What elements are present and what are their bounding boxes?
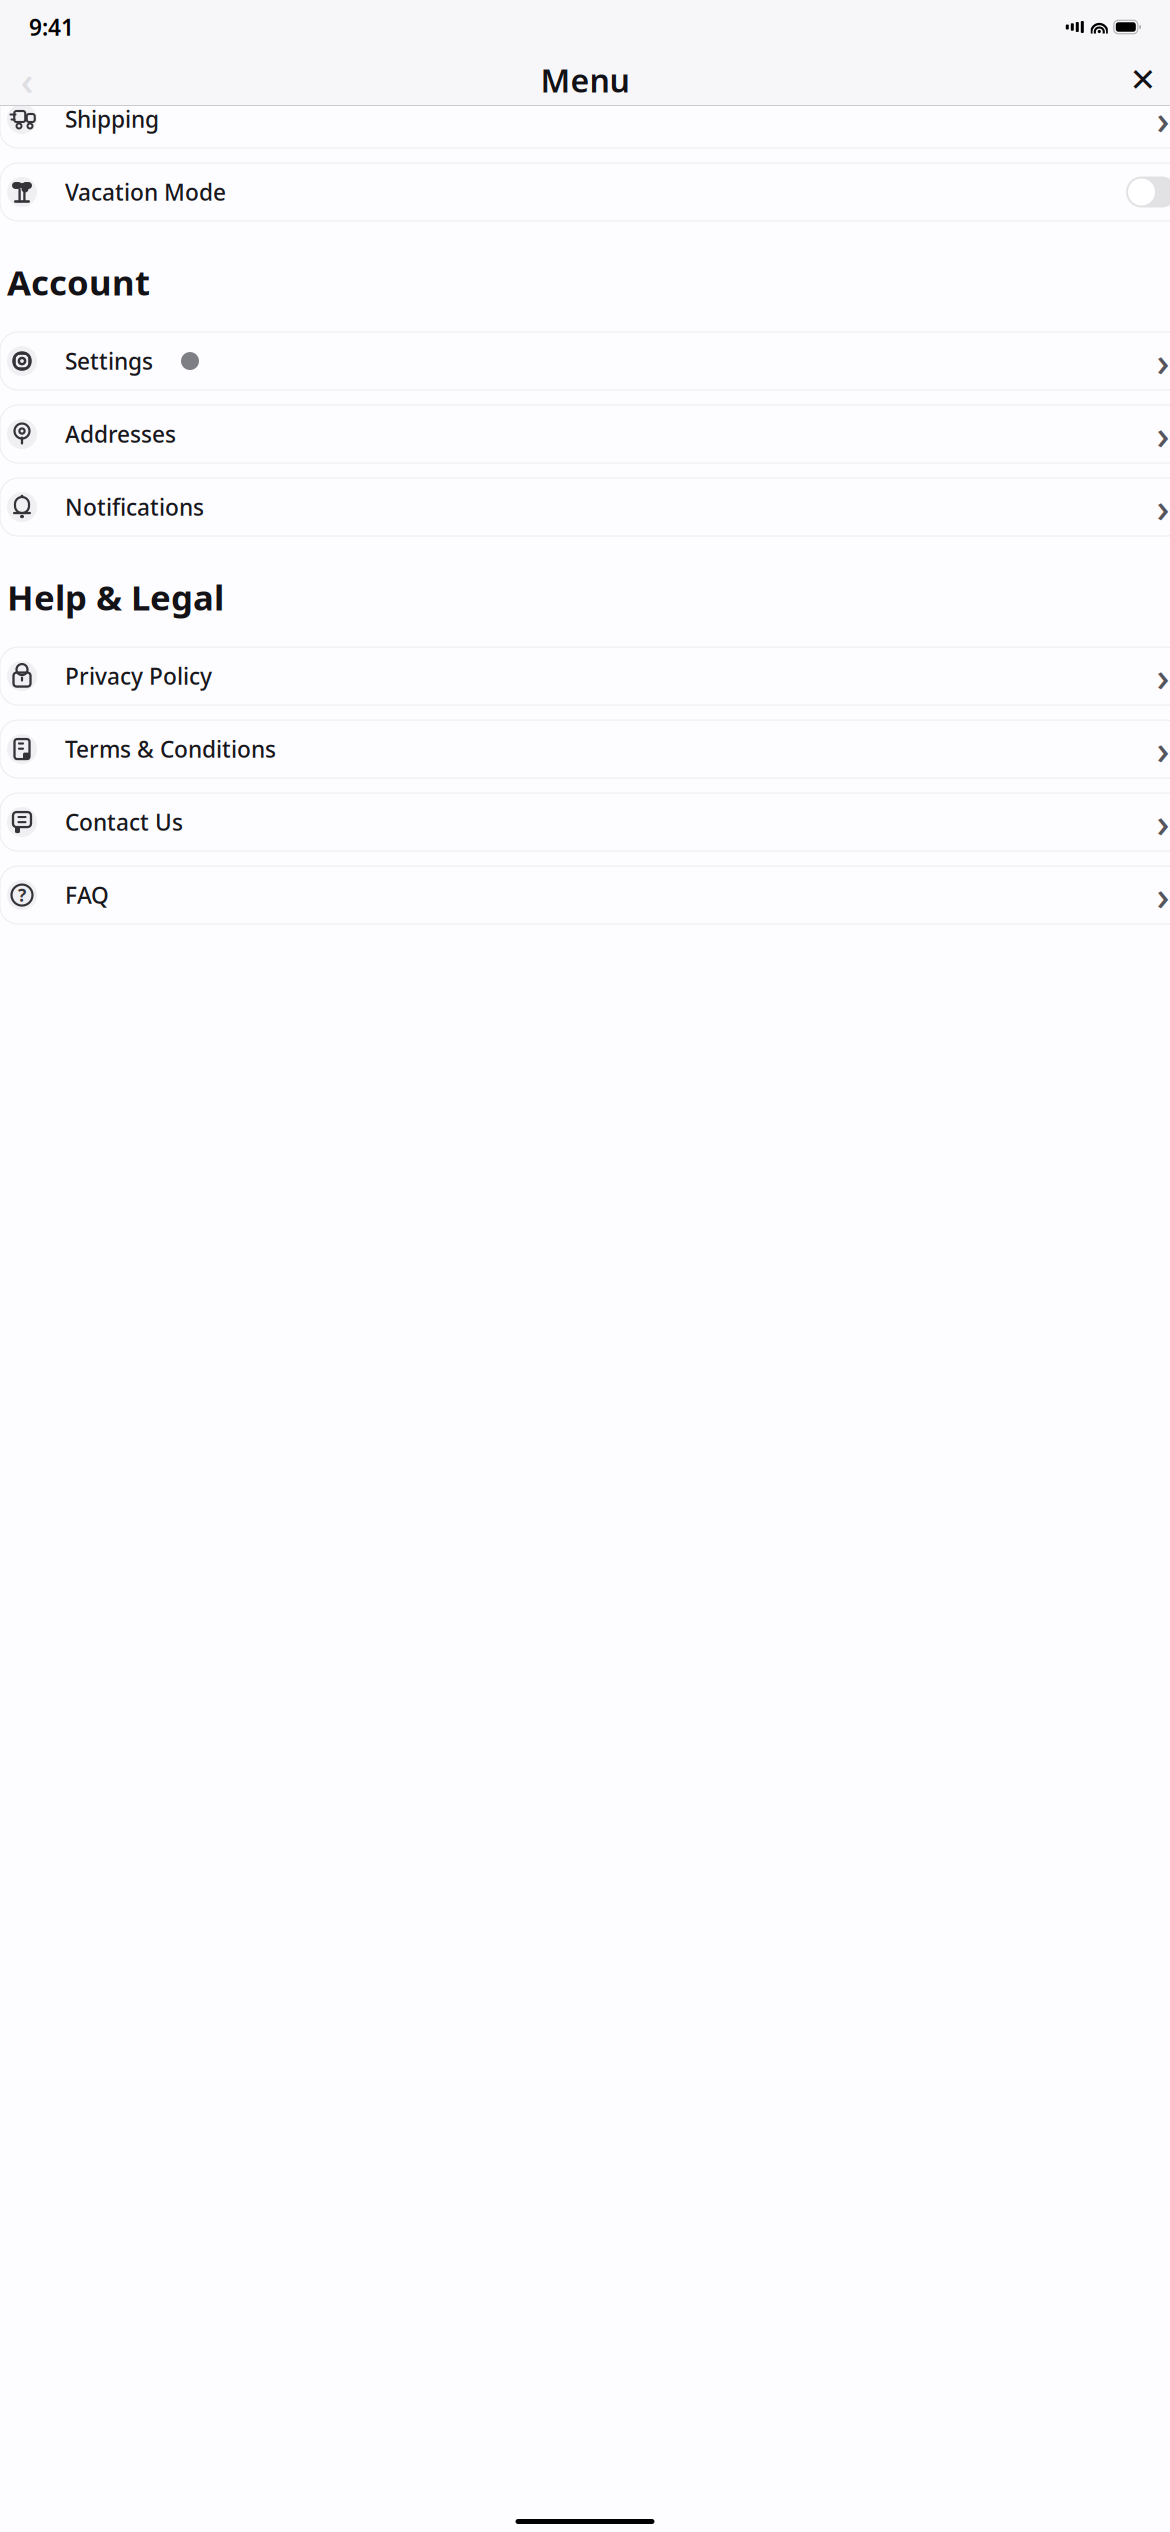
button[interactable]: Back: [5, 58, 49, 102]
staticText: 9:41: [29, 12, 74, 42]
staticText: Account: [7, 259, 150, 305]
staticText: Notifications: [65, 492, 204, 522]
staticText: ›: [1156, 480, 1169, 534]
staticText: ?: [18, 884, 26, 907]
staticText: Help & Legal: [7, 574, 224, 620]
staticText: Contact Us: [65, 807, 183, 837]
staticText: ›: [1156, 334, 1169, 388]
staticText: Addresses: [65, 419, 176, 449]
staticText: ✕: [1129, 62, 1156, 98]
staticText: ›: [1156, 868, 1169, 922]
staticText: FAQ: [65, 880, 109, 910]
staticText: Vacation Mode: [65, 177, 226, 207]
staticText: ›: [1156, 795, 1169, 849]
staticText: ›: [1156, 92, 1169, 145]
staticText: ›: [1156, 722, 1169, 776]
staticText: ›: [1156, 649, 1169, 703]
button[interactable]: Close: [1121, 58, 1165, 102]
staticText: Settings: [65, 346, 153, 376]
staticText: Shipping: [65, 104, 159, 134]
staticText: Menu: [540, 59, 629, 101]
staticText: ›: [1156, 407, 1169, 461]
staticText: Privacy Policy: [65, 661, 212, 691]
staticText: ‹: [20, 53, 33, 106]
staticText: Terms & Conditions: [65, 734, 276, 764]
